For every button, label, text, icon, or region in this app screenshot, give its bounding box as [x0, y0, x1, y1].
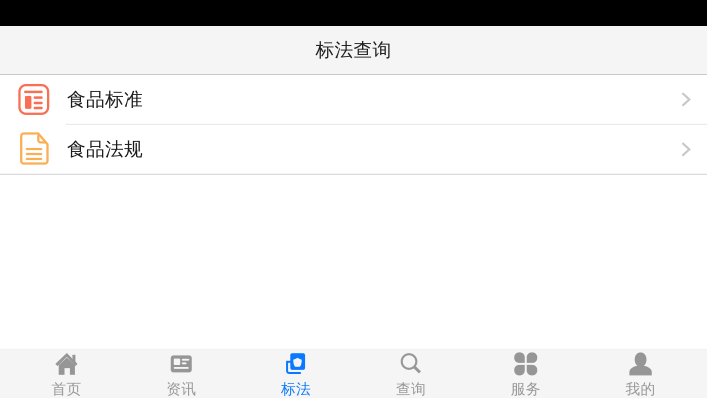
staticText: 首页 [51, 380, 81, 398]
button[interactable]: 服务 [468, 349, 583, 398]
button[interactable]: 首页 [9, 349, 124, 398]
button[interactable]: 食品标准 [0, 75, 707, 124]
button[interactable]: 标法 [239, 349, 353, 398]
staticText: 标法 [281, 380, 311, 398]
staticText: 食品法规 [67, 138, 143, 161]
staticText: 查询 [396, 380, 426, 398]
button[interactable]: 食品法规 [0, 125, 707, 174]
staticText: 服务 [511, 380, 541, 398]
button[interactable]: 我的 [583, 349, 698, 398]
staticText: 资讯 [166, 380, 196, 398]
button[interactable]: 资讯 [124, 349, 239, 398]
button[interactable]: 查询 [353, 349, 468, 398]
staticText: 我的 [626, 380, 656, 398]
staticText: 食品标准 [67, 88, 143, 111]
staticText: 标法查询 [315, 38, 391, 61]
